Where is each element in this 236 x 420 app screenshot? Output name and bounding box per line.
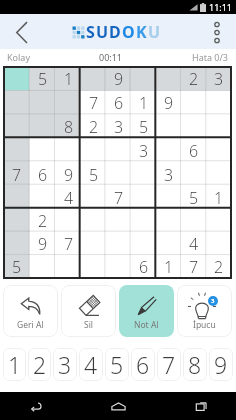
button[interactable]	[30, 115, 56, 139]
button[interactable]	[4, 91, 30, 115]
button[interactable]: 6	[181, 139, 206, 163]
button[interactable]: Not Al	[119, 285, 174, 337]
button[interactable]	[4, 67, 30, 91]
button[interactable]	[156, 139, 181, 163]
button[interactable]	[106, 255, 131, 278]
button[interactable]: 5	[30, 67, 56, 91]
button[interactable]: 2	[206, 255, 231, 278]
button[interactable]	[81, 255, 106, 278]
button[interactable]: 7	[81, 91, 106, 115]
button[interactable]: 8	[56, 115, 81, 139]
button[interactable]: 4	[56, 186, 81, 209]
button[interactable]: 5	[4, 255, 30, 278]
button[interactable]: Home	[105, 393, 131, 419]
button[interactable]	[56, 255, 81, 278]
button[interactable]	[81, 209, 106, 232]
button[interactable]	[4, 232, 30, 255]
button[interactable]	[4, 115, 30, 139]
button[interactable]: Geri Al	[3, 285, 58, 337]
button[interactable]	[106, 232, 131, 255]
button[interactable]	[4, 209, 30, 232]
button[interactable]	[30, 255, 56, 278]
button[interactable]	[181, 163, 206, 186]
button[interactable]	[206, 163, 231, 186]
button[interactable]: 6	[30, 163, 56, 186]
button[interactable]	[81, 232, 106, 255]
button[interactable]: Recent apps	[188, 393, 214, 419]
button[interactable]: Sil	[61, 285, 116, 337]
button[interactable]: 6	[131, 348, 155, 381]
button[interactable]: 6	[131, 255, 156, 278]
button[interactable]	[181, 115, 206, 139]
button[interactable]	[4, 139, 30, 163]
button[interactable]: 4	[79, 348, 103, 381]
button[interactable]: 3	[177, 285, 232, 337]
button[interactable]: 7	[56, 232, 81, 255]
button[interactable]: 2	[30, 209, 56, 232]
button[interactable]	[30, 139, 56, 163]
button[interactable]	[131, 232, 156, 255]
button[interactable]	[106, 209, 131, 232]
button[interactable]: 9	[106, 67, 131, 91]
button[interactable]: 2	[81, 115, 106, 139]
button[interactable]	[156, 115, 181, 139]
button[interactable]: 9	[156, 91, 181, 115]
button[interactable]	[206, 115, 231, 139]
button[interactable]: 2	[181, 67, 206, 91]
button[interactable]	[30, 186, 56, 209]
button[interactable]	[30, 91, 56, 115]
button[interactable]: 5	[181, 186, 206, 209]
button[interactable]	[156, 186, 181, 209]
button[interactable]	[181, 209, 206, 232]
button[interactable]	[206, 91, 231, 115]
staticText: 2	[33, 349, 47, 380]
button[interactable]	[156, 232, 181, 255]
button[interactable]: 2	[28, 348, 51, 381]
button[interactable]: 5	[131, 115, 156, 139]
button[interactable]: 8	[183, 348, 207, 381]
button[interactable]	[106, 139, 131, 163]
button[interactable]: 7	[181, 255, 206, 278]
button[interactable]	[4, 186, 30, 209]
button[interactable]	[81, 186, 106, 209]
button[interactable]	[131, 67, 156, 91]
button[interactable]: 9	[30, 232, 56, 255]
button[interactable]: 4	[181, 232, 206, 255]
button[interactable]: 1	[56, 67, 81, 91]
button[interactable]: 7	[157, 348, 181, 381]
button[interactable]: 1	[3, 348, 26, 381]
button[interactable]: 3	[131, 139, 156, 163]
button[interactable]: 5	[105, 348, 129, 381]
button[interactable]	[131, 209, 156, 232]
button[interactable]	[206, 209, 231, 232]
button[interactable]: 1	[131, 91, 156, 115]
button[interactable]: 6	[106, 91, 131, 115]
button[interactable]: 9	[56, 163, 81, 186]
button[interactable]	[156, 209, 181, 232]
button[interactable]: 5	[81, 163, 106, 186]
button[interactable]	[156, 67, 181, 91]
button[interactable]	[106, 163, 131, 186]
button[interactable]	[131, 186, 156, 209]
button[interactable]: 1	[156, 255, 181, 278]
button[interactable]	[81, 67, 106, 91]
button[interactable]: Back	[6, 17, 36, 47]
button[interactable]	[206, 232, 231, 255]
button[interactable]	[56, 209, 81, 232]
button[interactable]	[56, 139, 81, 163]
button[interactable]	[206, 139, 231, 163]
button[interactable]: 3	[53, 348, 77, 381]
button[interactable]: 3	[106, 115, 131, 139]
button[interactable]: 3	[206, 67, 231, 91]
button[interactable]: Back	[22, 393, 48, 419]
button[interactable]	[56, 91, 81, 115]
button[interactable]: 9	[209, 348, 233, 381]
button[interactable]	[131, 163, 156, 186]
button[interactable]	[81, 139, 106, 163]
button[interactable]: 7	[106, 186, 131, 209]
button[interactable]	[181, 91, 206, 115]
button[interactable]: 3	[156, 163, 181, 186]
button[interactable]: 1	[206, 186, 231, 209]
button[interactable]: More options	[205, 20, 229, 44]
button[interactable]: 7	[4, 163, 30, 186]
